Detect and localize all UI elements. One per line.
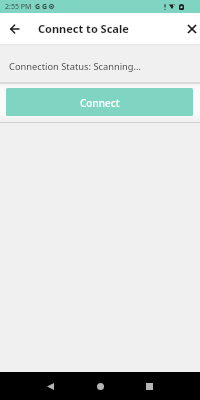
staticText: Connection Status: Scanning... — [9, 60, 141, 73]
staticText: Connect to Scale — [38, 21, 129, 36]
button[interactable]: Back — [3, 17, 26, 40]
button[interactable]: Home — [90, 376, 110, 396]
button[interactable]: Close — [180, 18, 200, 40]
staticText: 2:55 PM — [5, 2, 32, 12]
staticText: G — [42, 2, 48, 12]
button[interactable]: Recents — [139, 376, 159, 396]
staticText: Connect — [80, 96, 120, 110]
button[interactable]: Back — [40, 376, 60, 396]
staticText: G — [35, 2, 41, 12]
button[interactable]: Connect — [6, 88, 193, 116]
